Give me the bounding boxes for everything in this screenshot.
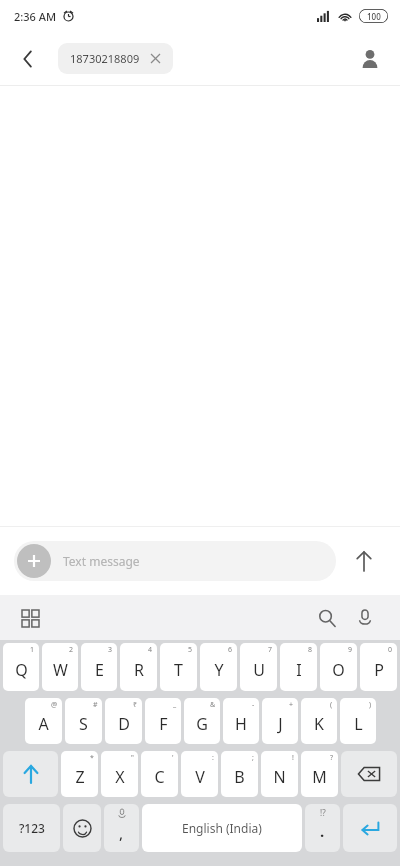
staticText: 5 [188,645,193,655]
button[interactable]: & [184,698,220,744]
button[interactable]: English (India) [142,804,302,852]
staticText: B [234,766,245,788]
staticText: ) [369,700,372,710]
staticText: A [38,713,49,735]
staticText: G [196,713,208,735]
button[interactable]: _ [145,698,181,744]
staticText: 0 [388,645,393,655]
button[interactable]: * [61,751,98,797]
staticText: ' [172,753,174,763]
button[interactable]: Voice input [346,599,384,637]
button[interactable]: ? [301,751,338,797]
button[interactable]: 5 [160,643,197,691]
staticText: 2:36 AM [14,9,57,24]
button[interactable]: 0 [360,643,397,691]
button[interactable]: !? [305,804,340,852]
staticText: + [289,700,294,710]
staticText: Q [15,659,28,681]
button[interactable]: Enter [343,804,397,852]
staticText: ? [330,753,334,763]
staticText: Y [214,659,224,681]
staticText: * [90,753,94,763]
staticText: " [131,753,134,763]
staticText: C [154,766,165,788]
button[interactable]: ₹ [105,698,142,744]
staticText: L [354,713,363,735]
button[interactable]: 1 [3,643,39,691]
button[interactable]: ( [301,698,337,744]
button[interactable]: 4 [120,643,157,691]
staticText: 3 [108,645,113,655]
staticText: 8 [308,645,313,655]
staticText: : [212,753,214,763]
staticText: O [332,659,345,681]
button[interactable]: + [262,698,298,744]
staticText: 1 [30,645,35,655]
staticText: P [374,659,384,681]
staticText: & [210,700,216,710]
button[interactable]: Attach [17,544,51,578]
staticText: J [278,713,283,735]
staticText: 9 [348,645,353,655]
button[interactable]: Shift [3,751,58,797]
button[interactable]: Emoji [63,804,101,852]
staticText: I [296,659,302,681]
staticText: ₹ [133,700,138,710]
staticText: . [320,821,325,841]
staticText: !? [320,807,326,818]
button[interactable]: Contact [350,39,390,79]
button[interactable]: Search [308,599,346,637]
button[interactable]: ?123 [3,804,60,852]
button[interactable]: 18730218809 [58,43,173,74]
button[interactable]: ! [261,751,298,797]
staticText: Z [75,766,85,788]
staticText: M [312,766,327,788]
staticText: R [134,659,144,681]
button[interactable]: 7 [240,643,277,691]
staticText: 7 [268,645,273,655]
staticText: D [118,713,130,735]
staticText: E [95,659,104,681]
staticText: H [235,713,247,735]
staticText: ! [292,753,294,763]
button[interactable]: , [104,804,139,852]
button[interactable]: - [223,698,259,744]
staticText: , [119,823,124,843]
staticText: English (India) [182,820,262,836]
staticText: X [115,766,125,788]
button[interactable]: ' [141,751,178,797]
button[interactable]: Send [342,539,386,583]
staticText: @ [51,700,58,710]
staticText: - [252,700,255,710]
button[interactable]: Keyboard menu [12,600,48,636]
button[interactable]: @ [25,698,62,744]
button[interactable]: 6 [200,643,237,691]
button[interactable]: : [181,751,218,797]
button[interactable]: 9 [320,643,357,691]
button[interactable]: 8 [280,643,317,691]
staticText: _ [173,700,177,710]
staticText: 6 [228,645,233,655]
button[interactable]: # [65,698,102,744]
button[interactable]: ) [340,698,376,744]
button[interactable]: Backspace [341,751,397,797]
staticText: K [314,713,324,735]
button[interactable]: Back [8,39,48,79]
button[interactable]: 3 [81,643,117,691]
staticText: Text message [63,553,140,569]
staticText: U [253,659,265,681]
staticText: # [93,700,98,710]
button[interactable]: 2 [42,643,78,691]
staticText: F [159,713,168,735]
staticText: 4 [148,645,153,655]
staticText: 100 [367,11,381,22]
staticText: T [174,659,183,681]
button[interactable]: " [101,751,138,797]
staticText: ?123 [19,820,45,836]
staticText: W [53,659,68,681]
button[interactable]: ; [221,751,258,797]
staticText: V [195,766,205,788]
button[interactable]: Attach [14,541,336,581]
staticText: S [79,713,88,735]
staticText: ; [252,753,254,763]
